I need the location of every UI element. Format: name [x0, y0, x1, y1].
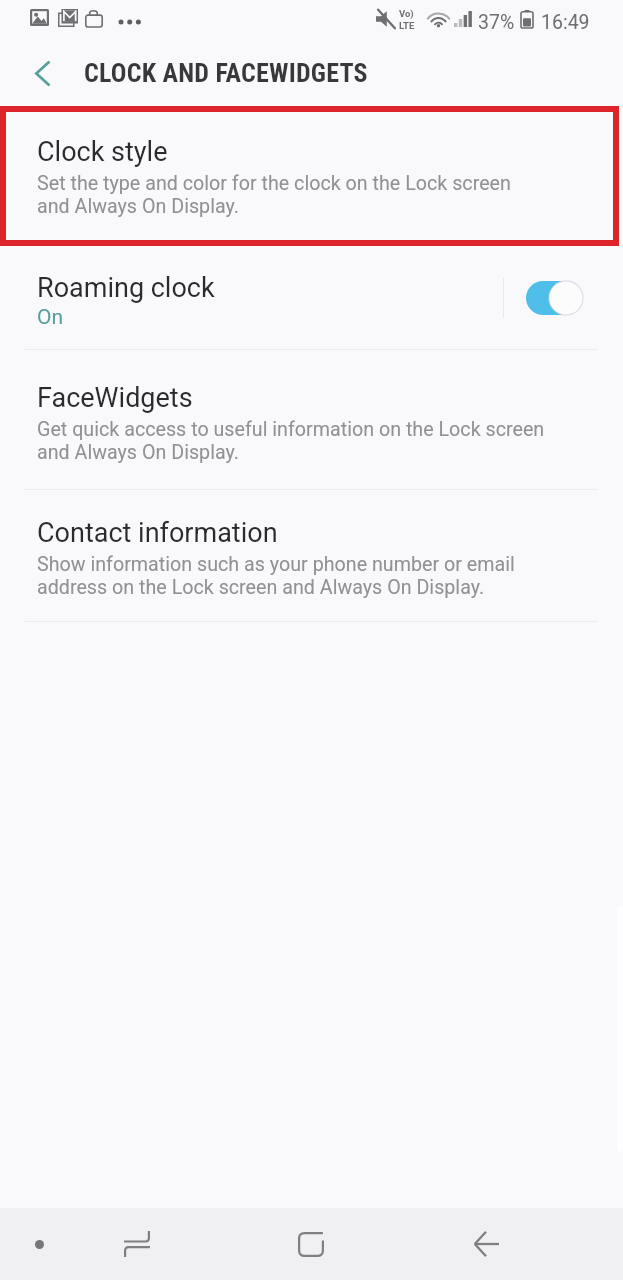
staticText: CLOCK AND FACEWIDGETS	[84, 58, 368, 88]
staticText: Clock style	[37, 136, 168, 168]
staticText: Contact information	[37, 517, 278, 549]
button[interactable]: Navigate up	[14, 48, 70, 98]
button[interactable]: Contact information	[0, 497, 623, 624]
staticText: Vo)	[399, 8, 414, 19]
staticText: Get quick access to useful information o…	[37, 418, 545, 463]
button[interactable]: Home	[261, 1208, 361, 1280]
staticText: FaceWidgets	[37, 382, 193, 414]
staticText: Set the type and color for the clock on …	[37, 172, 511, 217]
button[interactable]: Roaming clock	[0, 247, 623, 349]
button[interactable]: FaceWidgets	[0, 362, 623, 492]
button[interactable]: Roaming clock	[526, 281, 583, 315]
button[interactable]: Show menu	[0, 1208, 78, 1280]
staticText: Show information such as your phone numb…	[37, 553, 515, 598]
button[interactable]: Back	[436, 1208, 536, 1280]
staticText: 16:49	[541, 11, 590, 34]
button[interactable]: Recent apps	[87, 1208, 187, 1280]
staticText: Roaming clock	[37, 272, 215, 304]
staticText: On	[37, 305, 64, 330]
staticText: 37%	[478, 11, 515, 34]
button[interactable]: Clock style	[0, 116, 623, 249]
staticText: LTE	[399, 20, 415, 31]
